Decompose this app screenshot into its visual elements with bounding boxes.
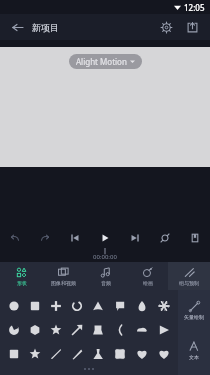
button[interactable]: Alight Motion <box>76 56 135 67</box>
button[interactable]: Bookmark <box>180 228 210 248</box>
staticText: 图像和视频 <box>51 280 76 286</box>
button[interactable]: Shape 7 <box>153 294 175 318</box>
button[interactable]: Shape 1 <box>24 294 45 318</box>
button[interactable]: Shape 5 <box>109 294 131 318</box>
button[interactable]: Shape 19 <box>66 342 87 366</box>
staticText: 新项目 <box>32 22 59 33</box>
button[interactable]: Back <box>8 18 26 36</box>
staticText: 音频 <box>101 280 111 286</box>
staticText: 12:05 <box>184 2 205 13</box>
button[interactable]: Shape 17 <box>24 342 45 366</box>
button[interactable]: Shape 18 <box>45 342 66 366</box>
button[interactable]: 组与预制 <box>168 262 210 290</box>
button[interactable]: Shape 21 <box>109 342 131 366</box>
button[interactable]: Shape 0 <box>3 294 24 318</box>
button[interactable]: Loop <box>150 228 180 248</box>
button[interactable]: Shape 2 <box>45 294 66 318</box>
button[interactable]: Shape 6 <box>131 294 153 318</box>
button[interactable]: Shape 12 <box>87 318 109 342</box>
button[interactable]: Shape 22 <box>131 342 153 366</box>
button[interactable]: 形状 <box>0 262 42 290</box>
button[interactable]: Shape 15 <box>153 318 175 342</box>
button[interactable]: Shape 20 <box>87 342 109 366</box>
button[interactable]: Shape 14 <box>131 318 153 342</box>
button[interactable]: 矢量绘制 <box>178 290 210 330</box>
button[interactable]: Settings <box>156 17 176 37</box>
button[interactable]: Shape 23 <box>153 342 175 366</box>
button[interactable]: Shape 9 <box>24 318 45 342</box>
button[interactable]: Skip to end <box>120 228 150 248</box>
button[interactable]: Shape 10 <box>45 318 66 342</box>
staticText: 形状 <box>17 280 27 286</box>
staticText: 组与预制 <box>179 280 199 286</box>
button[interactable]: Shape 3 <box>66 294 87 318</box>
button[interactable]: Undo <box>0 228 30 248</box>
button[interactable]: Export <box>182 17 202 37</box>
button[interactable]: Play <box>90 228 120 248</box>
staticText: 矢量绘制 <box>184 314 204 320</box>
button[interactable]: Shape 4 <box>87 294 109 318</box>
button[interactable]: 文本 <box>178 330 210 370</box>
button[interactable]: Shape 11 <box>66 318 87 342</box>
button[interactable]: Shape 13 <box>109 318 131 342</box>
staticText: 00:00:00 <box>93 253 117 261</box>
button[interactable]: Skip to start <box>60 228 90 248</box>
staticText: 文本 <box>189 354 199 360</box>
button[interactable]: 图像和视频 <box>42 262 84 290</box>
button[interactable]: 音频 <box>84 262 126 290</box>
button[interactable]: Redo <box>30 228 60 248</box>
button[interactable]: Shape 8 <box>3 318 24 342</box>
button[interactable]: Shape 16 <box>3 342 24 366</box>
staticText: Alight Motion <box>76 56 127 67</box>
button[interactable]: 绘画 <box>126 262 168 290</box>
staticText: 绘画 <box>143 280 153 286</box>
